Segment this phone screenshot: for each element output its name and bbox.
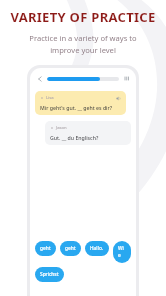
- staticText: geht: [40, 245, 51, 252]
- staticText: Practice in a variety of ways to improve…: [10, 33, 156, 56]
- staticText: Hallo.: [90, 245, 104, 252]
- button[interactable]: Sprichst: [35, 267, 64, 282]
- button[interactable]: Jason: [45, 121, 131, 145]
- button[interactable]: geht: [60, 241, 81, 256]
- staticText: VARIETY OF PRACTICE: [0, 8, 166, 26]
- staticText: Lisa: [46, 95, 54, 101]
- staticText: Wie: [118, 245, 126, 259]
- staticText: geht: [65, 245, 76, 252]
- button[interactable]: Hallo.: [85, 241, 109, 256]
- staticText: Mir geht's gut. __ geht es dir?: [40, 104, 113, 111]
- button[interactable]: geht: [35, 241, 56, 256]
- button[interactable]: Back: [35, 74, 44, 83]
- button[interactable]: Close lesson: [122, 74, 131, 83]
- button[interactable]: Wie: [113, 241, 131, 263]
- button[interactable]: Play audio: [115, 95, 121, 101]
- button[interactable]: Lisa: [35, 91, 126, 115]
- staticText: Jason: [56, 125, 67, 131]
- staticText: Gut. __ du Englisch?: [50, 134, 99, 141]
- staticText: Sprichst: [40, 271, 59, 278]
